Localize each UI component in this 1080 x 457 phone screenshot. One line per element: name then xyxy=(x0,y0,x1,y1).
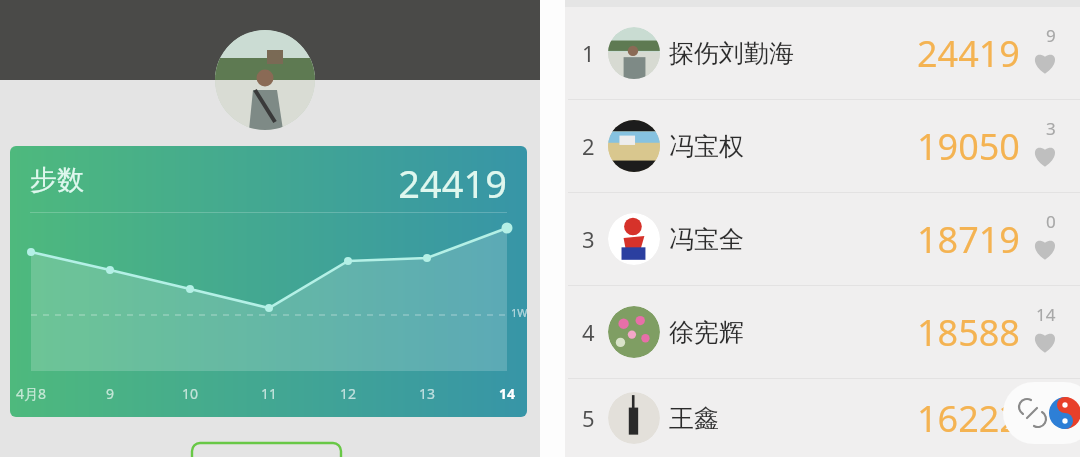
staticText: 13 xyxy=(397,384,457,403)
staticText: 14 xyxy=(477,384,527,403)
staticText: 4月8 xyxy=(10,384,61,403)
staticText: 10 xyxy=(160,384,220,403)
staticText: 冯宝权 xyxy=(669,131,744,162)
staticText: 14 xyxy=(1036,303,1056,326)
staticText: 步数 xyxy=(30,163,84,197)
button[interactable]: 4 xyxy=(565,286,1080,378)
staticText: 探伤刘勤海 xyxy=(669,38,794,69)
button[interactable]: 1 xyxy=(565,7,1080,99)
other: Like xyxy=(1032,235,1058,261)
staticText: 12 xyxy=(318,384,378,403)
staticText: 王鑫 xyxy=(669,403,719,434)
staticText: 3 xyxy=(582,224,595,254)
staticText: 徐宪辉 xyxy=(669,317,744,348)
staticText: 4 xyxy=(582,317,595,347)
other: Like xyxy=(1032,49,1058,75)
button[interactable]: 3 xyxy=(565,193,1080,285)
staticText: 3 xyxy=(1046,117,1056,140)
staticText: 9 xyxy=(1046,24,1056,47)
button[interactable]: Profile photo xyxy=(215,30,315,130)
staticText: 19050 xyxy=(917,122,1020,171)
staticText: 18719 xyxy=(917,215,1020,264)
staticText: 11 xyxy=(239,384,299,403)
button[interactable]: Share link xyxy=(1003,382,1080,444)
staticText: 1W xyxy=(511,305,527,320)
button[interactable]: 步数 xyxy=(10,146,527,417)
staticText: 0 xyxy=(1046,210,1056,233)
staticText: 2 xyxy=(582,131,595,161)
other: Like xyxy=(1032,328,1058,354)
button[interactable] xyxy=(192,443,341,457)
staticText: 冯宝全 xyxy=(669,224,744,255)
staticText: 16222 xyxy=(917,394,1020,443)
staticText: 18588 xyxy=(917,308,1020,357)
staticText: 9 xyxy=(80,384,140,403)
staticText: 1 xyxy=(582,38,595,68)
button[interactable]: 5 xyxy=(565,379,1080,457)
staticText: 24419 xyxy=(917,29,1020,78)
other: Like xyxy=(1032,142,1058,168)
staticText: 24419 xyxy=(335,157,507,209)
button[interactable]: 2 xyxy=(565,100,1080,192)
staticText: 5 xyxy=(582,403,595,433)
